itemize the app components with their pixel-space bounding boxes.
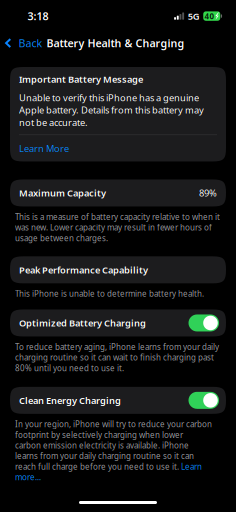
staticText: This iPhone is unable to determine batte… [15,288,204,299]
staticText: Optimized Battery Charging [19,317,146,329]
staticText: reach full charge before you need to use… [15,461,181,472]
staticText: learns from your daily charging routine … [15,451,194,461]
staticText: more... [15,472,41,483]
button[interactable]: Back [0,33,43,53]
button[interactable]: Clean Energy Charging [0,387,236,414]
staticText: Peak Performance Capability [19,264,148,276]
staticText: This is a measure of battery capacity re… [15,211,220,243]
staticText: Important Battery Message [19,73,143,85]
staticText: footprint by selectively charging when l… [15,429,183,440]
staticText: Battery Health & Charging [46,36,184,50]
staticText: 5G [188,10,200,22]
staticText: carbon emission electricity is available… [15,440,189,451]
button[interactable]: Optimized Battery Charging [0,309,236,336]
staticText: In your region, iPhone will try to reduc… [15,419,212,429]
staticText: Learn More [19,142,69,154]
button[interactable]: more... [15,472,221,483]
staticText: Learn [181,461,202,472]
staticText: Maximum Capacity [19,187,106,199]
staticText: Clean Energy Charging [19,394,121,406]
staticText: 40 [204,11,214,21]
button[interactable]: Learn More [19,141,69,155]
staticText: Unable to verify this iPhone has a genui… [19,91,204,129]
staticText: 3:18 [27,9,48,23]
staticText: To reduce battery aging, iPhone learns f… [15,341,219,373]
staticText: Back [18,36,42,50]
button[interactable]: Maximum Capacity [0,179,236,206]
button[interactable]: Learn [181,461,202,472]
button[interactable]: Peak Performance Capability [0,256,236,283]
staticText: 89% [199,187,217,199]
